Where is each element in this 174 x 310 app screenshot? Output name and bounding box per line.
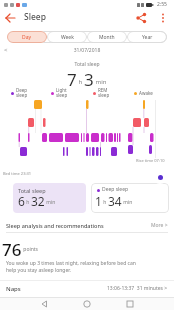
- staticText: Deep sleep: [102, 186, 129, 193]
- button[interactable]: [81, 298, 93, 310]
- staticText: 3: [84, 68, 94, 88]
- button[interactable]: [124, 298, 136, 310]
- button[interactable]: [134, 11, 148, 25]
- button[interactable]: Naps: [0, 281, 174, 296]
- button[interactable]: Total sleep: [13, 183, 86, 213]
- button[interactable]: Sleep analysis and recommendations: [0, 219, 174, 231]
- staticText: h: [102, 199, 108, 206]
- staticText: Week: [61, 34, 74, 41]
- staticText: 34: [108, 193, 122, 208]
- staticText: Awake: [139, 90, 153, 96]
- staticText: Naps: [6, 285, 21, 293]
- button[interactable]: [38, 298, 50, 310]
- button[interactable]: Day: [7, 31, 47, 43]
- staticText: h: [25, 199, 31, 206]
- staticText: 6: [18, 193, 25, 208]
- staticText: Bed time 23:31: [3, 171, 32, 176]
- staticText: 31/07/2018: [0, 47, 174, 54]
- button[interactable]: Month: [87, 31, 127, 43]
- staticText: Sleep: [24, 11, 46, 23]
- staticText: 76: [2, 238, 22, 256]
- staticText: Total sleep: [18, 187, 46, 194]
- staticText: 1: [95, 193, 102, 208]
- staticText: Light sleep: [56, 87, 68, 99]
- staticText: More >: [151, 222, 168, 229]
- staticText: 7: [67, 68, 77, 88]
- staticText: 2:55: [157, 1, 167, 8]
- staticText: <: [4, 46, 8, 54]
- button[interactable]: [153, 170, 167, 184]
- staticText: min: [45, 199, 56, 206]
- staticText: points: [22, 246, 38, 253]
- staticText: min: [94, 78, 107, 86]
- staticText: Day: [22, 34, 32, 41]
- staticText: min: [122, 199, 133, 206]
- staticText: Year: [142, 34, 153, 41]
- button[interactable]: [2, 10, 18, 26]
- staticText: Total sleep: [0, 61, 174, 68]
- staticText: Month: [99, 34, 115, 41]
- staticText: h: [77, 78, 84, 86]
- button[interactable]: Deep sleep: [91, 183, 169, 213]
- button[interactable]: Year: [127, 31, 167, 43]
- staticText: Rise time 07:10: [136, 158, 165, 163]
- staticText: Sleep analysis and recommendations: [6, 222, 104, 229]
- staticText: Deep sleep: [16, 87, 28, 99]
- staticText: You woke up 3 times last night, relaxing…: [6, 260, 136, 274]
- staticText: REM sleep: [98, 87, 110, 99]
- staticText: 32: [31, 193, 45, 208]
- staticText: 13:06-13:37 31 minutes >: [107, 285, 168, 292]
- button[interactable]: [156, 11, 170, 25]
- button[interactable]: Week: [47, 31, 87, 43]
